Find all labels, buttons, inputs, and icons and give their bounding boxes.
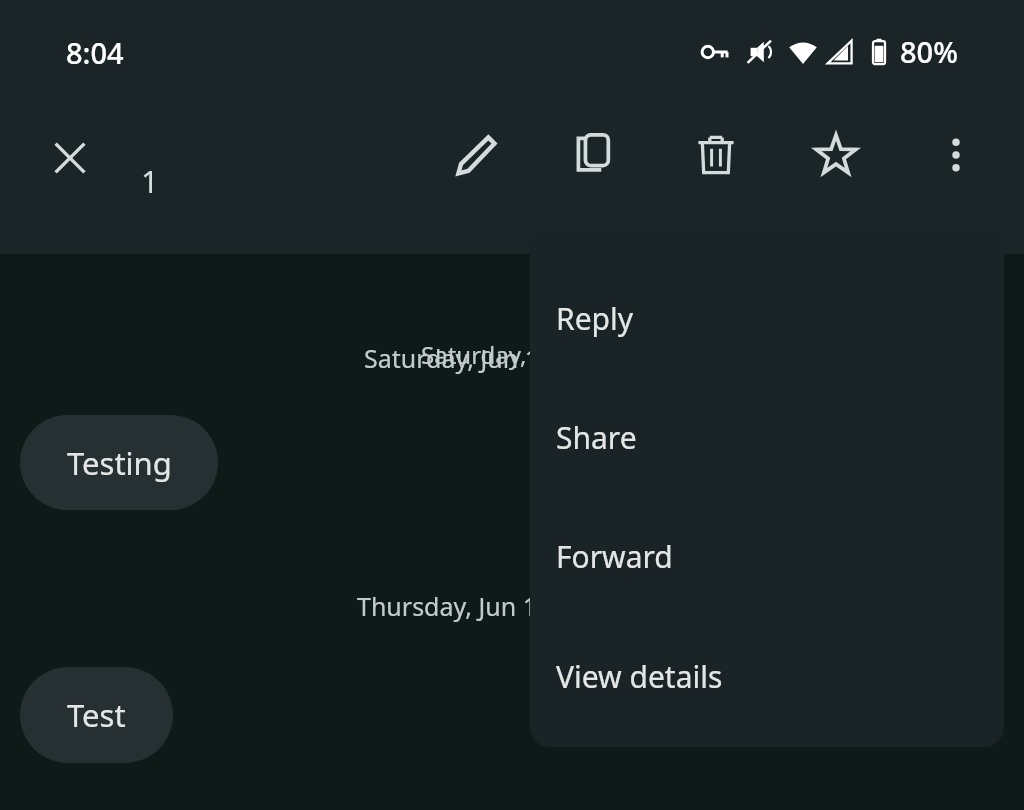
button[interactable]: Forward	[530, 526, 1004, 586]
button[interactable]: Test	[20, 667, 173, 763]
button[interactable]: Edit	[441, 120, 511, 190]
button[interactable]: Copy	[561, 120, 631, 190]
staticText: 80%	[900, 32, 958, 71]
staticText: View details	[556, 656, 723, 697]
button[interactable]: Close	[34, 122, 106, 194]
button[interactable]: Testing	[20, 415, 218, 510]
staticText: Reply	[556, 298, 634, 339]
button[interactable]: Reply	[530, 288, 1004, 348]
staticText: Saturday, Jun 14	[364, 341, 554, 375]
staticText: Saturday, Jun 14	[421, 338, 603, 371]
staticText: 8:04	[66, 33, 124, 72]
staticText: Test	[67, 694, 126, 736]
button[interactable]: More options	[921, 120, 991, 190]
button[interactable]: Delete	[681, 120, 751, 190]
button[interactable]: View details	[530, 646, 1004, 706]
button[interactable]: Share	[530, 407, 1004, 467]
staticText: Testing	[67, 442, 172, 484]
staticText: Forward	[556, 536, 673, 577]
staticText: Thursday, Jun 12	[357, 589, 552, 623]
staticText: 1	[141, 160, 159, 202]
button[interactable]: Star	[801, 120, 871, 190]
staticText: Share	[556, 417, 637, 458]
